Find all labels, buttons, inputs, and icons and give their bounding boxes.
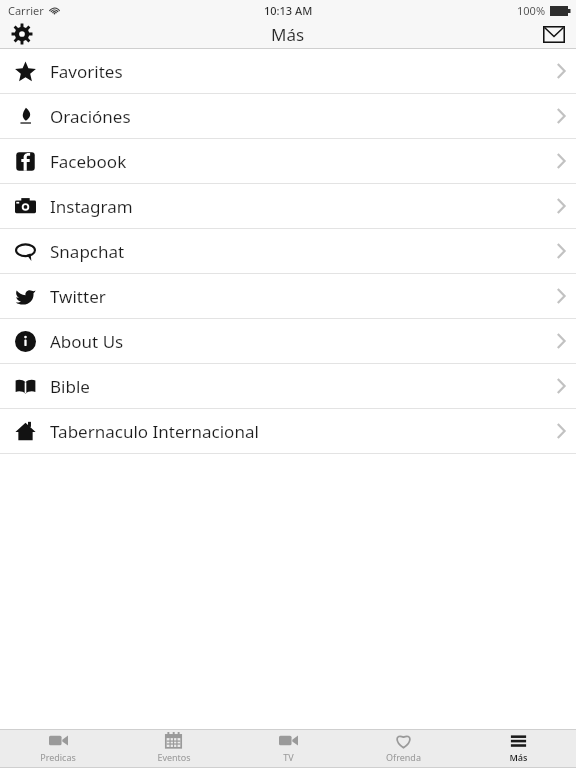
button[interactable]: Twitter	[0, 274, 576, 319]
button[interactable]: Bible	[0, 364, 576, 409]
staticText: Carrier	[8, 3, 44, 18]
staticText: Bible	[50, 375, 546, 398]
staticText: About Us	[50, 330, 546, 353]
button[interactable]: Tabernaculo Internacional	[0, 409, 576, 454]
button[interactable]: Eventos	[116, 730, 231, 765]
button[interactable]: TV	[231, 730, 346, 765]
staticText: Más	[509, 751, 528, 763]
staticText: Twitter	[50, 285, 546, 308]
staticText: 100%	[517, 3, 546, 18]
button[interactable]: Predicas	[0, 730, 116, 765]
button[interactable]: Snapchat	[0, 229, 576, 274]
staticText: Oraciónes	[50, 105, 546, 128]
staticText: Eventos	[157, 751, 191, 763]
staticText: Favorites	[50, 60, 546, 83]
button[interactable]: Favorites	[0, 49, 576, 94]
button[interactable]: About Us	[0, 319, 576, 364]
staticText: Facebook	[50, 150, 546, 173]
staticText: Más	[271, 23, 305, 46]
button[interactable]: Facebook	[0, 139, 576, 184]
staticText: TV	[283, 751, 294, 763]
button[interactable]: Oraciónes	[0, 94, 576, 139]
staticText: 10:13 AM	[264, 3, 313, 18]
staticText: Tabernaculo Internacional	[50, 420, 546, 443]
button[interactable]: Settings	[0, 20, 44, 48]
staticText: Snapchat	[50, 240, 546, 263]
staticText: Ofrenda	[386, 751, 421, 763]
button[interactable]: Mail	[532, 20, 576, 48]
staticText: Predicas	[40, 751, 76, 763]
button[interactable]: Más	[461, 730, 576, 765]
button[interactable]: Instagram	[0, 184, 576, 229]
button[interactable]: Ofrenda	[346, 730, 461, 765]
staticText: Instagram	[50, 195, 546, 218]
